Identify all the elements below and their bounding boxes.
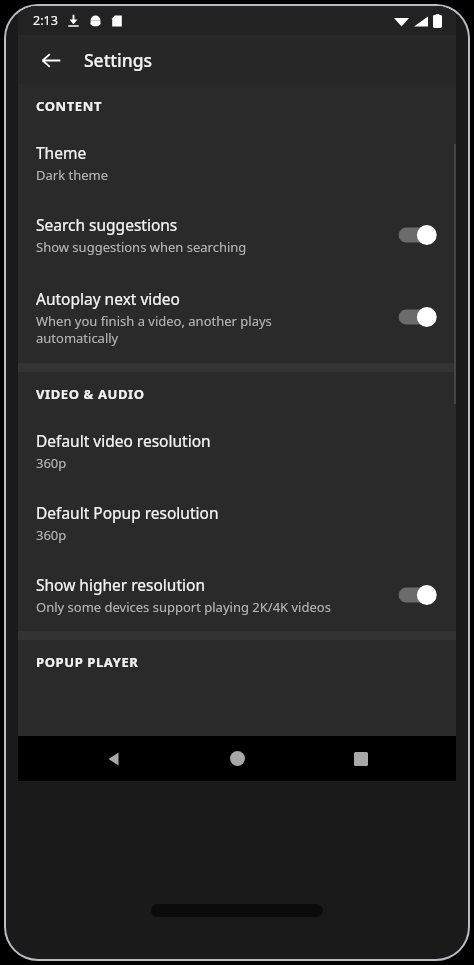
button[interactable]: Theme bbox=[18, 127, 456, 199]
staticText: VIDEO & AUDIO bbox=[36, 385, 145, 403]
button[interactable]: Back bbox=[86, 736, 142, 781]
button[interactable]: Search suggestions bbox=[18, 199, 456, 271]
staticText: Search suggestions bbox=[36, 214, 178, 235]
button[interactable]: Autoplay next video bbox=[18, 271, 456, 363]
staticText: 360p bbox=[36, 454, 67, 472]
staticText: Autoplay next video bbox=[36, 288, 180, 309]
button[interactable]: Search suggestions bbox=[396, 220, 440, 250]
staticText: Dark theme bbox=[36, 166, 109, 184]
staticText: When you finish a video, another plays a… bbox=[36, 312, 272, 347]
button[interactable]: Default video resolution bbox=[18, 415, 456, 487]
staticText: CONTENT bbox=[36, 97, 102, 115]
button[interactable]: Show higher resolution bbox=[18, 559, 456, 631]
staticText: Show higher resolution bbox=[36, 574, 205, 595]
button[interactable]: Default Popup resolution bbox=[18, 487, 456, 559]
staticText: Default video resolution bbox=[36, 430, 211, 451]
button[interactable]: Back bbox=[34, 43, 68, 77]
staticText: POPUP PLAYER bbox=[36, 653, 139, 671]
staticText: Default Popup resolution bbox=[36, 502, 219, 523]
staticText: Show suggestions when searching bbox=[36, 238, 247, 256]
button[interactable]: Recents bbox=[333, 736, 389, 781]
staticText: Theme bbox=[36, 142, 87, 163]
button[interactable]: Show higher resolution bbox=[396, 580, 440, 610]
staticText: Only some devices support playing 2K/4K … bbox=[36, 598, 331, 616]
button[interactable]: Autoplay next video bbox=[396, 302, 440, 332]
staticText: Settings bbox=[84, 48, 153, 72]
staticText: 360p bbox=[36, 526, 67, 544]
button[interactable]: Home bbox=[209, 736, 265, 781]
staticText: 2:13 bbox=[33, 12, 58, 29]
